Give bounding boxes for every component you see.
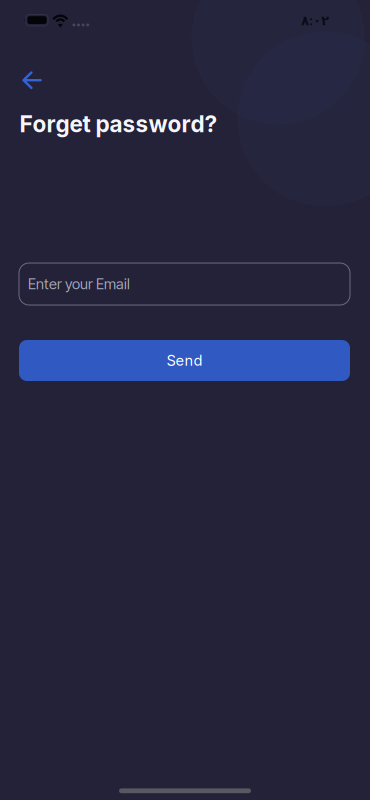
staticText: Send xyxy=(166,352,202,369)
staticText: Enter your Email xyxy=(28,275,130,293)
button[interactable]: Back xyxy=(0,63,58,97)
staticText: Forget password? xyxy=(19,110,217,138)
staticText: ۸:۰۲ xyxy=(301,12,329,28)
button[interactable]: Send xyxy=(19,340,350,381)
